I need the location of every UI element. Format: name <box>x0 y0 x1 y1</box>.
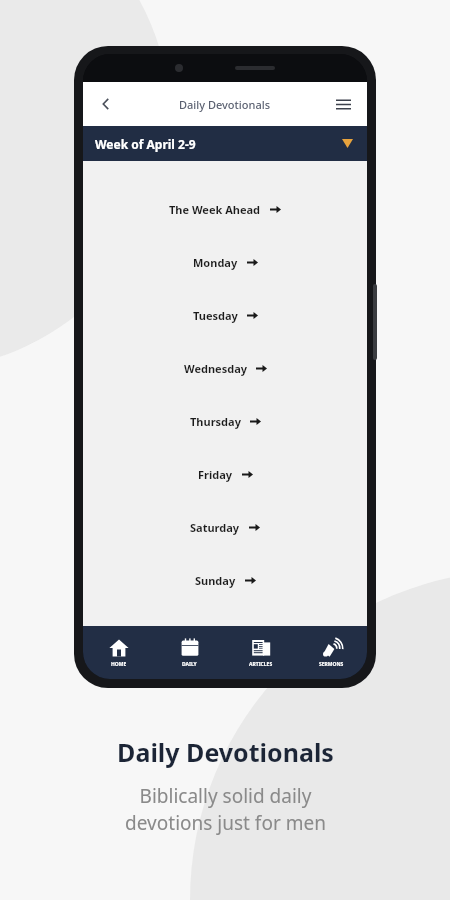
button[interactable]: Thursday <box>83 395 367 448</box>
staticText: Daily Devotionals <box>179 97 271 112</box>
button[interactable]: Back <box>89 87 123 121</box>
staticText: Thursday <box>190 414 241 429</box>
button[interactable]: Menu <box>327 88 359 120</box>
button[interactable]: The Week Ahead <box>83 183 367 236</box>
button[interactable]: Friday <box>83 448 367 501</box>
staticText: Sunday <box>195 573 236 588</box>
staticText: DAILY <box>182 661 197 668</box>
staticText: Monday <box>193 255 238 270</box>
staticText: Tuesday <box>193 308 238 323</box>
staticText: Saturday <box>190 520 240 535</box>
staticText: Biblically solid daily devotions just fo… <box>125 783 326 836</box>
staticText: Wednesday <box>184 361 247 376</box>
button[interactable]: Saturday <box>83 501 367 554</box>
button[interactable]: ARTICLES <box>225 626 296 679</box>
button[interactable]: SERMONS <box>296 626 367 679</box>
button[interactable]: Sunday <box>83 554 367 607</box>
button[interactable]: Wednesday <box>83 342 367 395</box>
button[interactable]: Week of April 2-9 <box>83 126 367 161</box>
staticText: ARTICLES <box>249 661 273 668</box>
staticText: The Week Ahead <box>169 202 261 217</box>
staticText: SERMONS <box>319 661 344 668</box>
button[interactable]: Tuesday <box>83 289 367 342</box>
button[interactable]: Monday <box>83 236 367 289</box>
button[interactable]: HOME <box>83 626 154 679</box>
button[interactable]: DAILY <box>154 626 225 679</box>
staticText: HOME <box>111 661 127 668</box>
staticText: Week of April 2-9 <box>95 136 196 152</box>
staticText: Daily Devotionals <box>117 735 334 769</box>
staticText: Friday <box>198 467 233 482</box>
